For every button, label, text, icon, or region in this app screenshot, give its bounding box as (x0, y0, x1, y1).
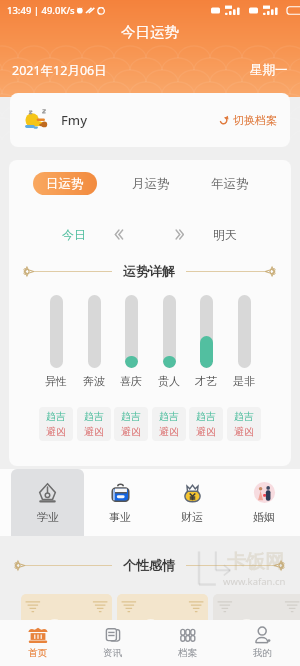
button[interactable]: 档案 (150, 620, 225, 666)
staticText: 日运势 (46, 176, 84, 192)
button[interactable]: 日运势 (33, 172, 97, 195)
staticText: Fmy (61, 111, 88, 129)
button[interactable]: 趋吉 (227, 407, 261, 441)
staticText: 趋吉 (84, 410, 104, 423)
button[interactable]: 趋吉 (114, 407, 148, 441)
button[interactable]: 学业 (11, 469, 84, 536)
staticText: 我的 (253, 647, 272, 659)
button[interactable]: 月运势 (123, 172, 179, 195)
staticText: 避凶 (196, 425, 216, 438)
staticText: 趋吉 (196, 410, 216, 423)
button[interactable]: 事业 (84, 469, 156, 536)
button[interactable]: 趋吉 (77, 407, 111, 441)
staticText: 婚姻 (253, 510, 275, 524)
button[interactable]: 明天 (207, 225, 243, 243)
staticText: 奔波 (83, 374, 105, 388)
button[interactable]: 今日 (56, 225, 92, 243)
staticText: 资讯 (103, 647, 122, 659)
button[interactable]: 资讯 (75, 620, 150, 666)
button[interactable]: 下一天 (166, 225, 194, 243)
staticText: 喜庆 (120, 374, 142, 388)
staticText: 个性感情 (123, 557, 175, 573)
staticText: 今日运势 (121, 23, 179, 41)
staticText: 才艺 (195, 374, 217, 388)
staticText: 事业 (109, 510, 131, 524)
staticText: 月运势 (132, 176, 170, 192)
button[interactable]: 我的 (225, 620, 300, 666)
staticText: 趋吉 (159, 410, 179, 423)
staticText: 财运 (181, 510, 203, 524)
staticText: 卡饭网 (227, 550, 284, 574)
staticText: 感情 (170, 638, 192, 652)
staticText: 运势详解 (123, 263, 175, 279)
staticText: 切换档案 (233, 113, 277, 127)
staticText: 档案 (178, 647, 197, 659)
button[interactable]: Fmy (10, 93, 290, 147)
staticText: www.kafan.cn (223, 575, 286, 588)
staticText: 趋吉 (234, 410, 254, 423)
staticText: 2021年12月06日 (12, 62, 107, 79)
staticText: 是非 (233, 374, 255, 388)
other: 切换档案 (218, 115, 229, 126)
button[interactable]: 财富 (213, 594, 300, 654)
staticText: 今日 (62, 227, 86, 242)
staticText: 异性 (45, 374, 67, 388)
staticText: 贵人 (158, 374, 180, 388)
staticText: 13:49 | 49.0K/s (7, 4, 75, 17)
button[interactable]: 趋吉 (39, 407, 73, 441)
staticText: 趋吉 (46, 410, 66, 423)
button[interactable]: 婚姻 (228, 469, 300, 536)
button[interactable]: 感情 (117, 594, 208, 654)
button[interactable]: 财运 (156, 469, 228, 536)
staticText: 星期一 (250, 62, 288, 78)
staticText: 年运势 (211, 176, 249, 192)
staticText: 避凶 (46, 425, 66, 438)
button[interactable]: 首页 (0, 620, 75, 666)
staticText: 学业 (37, 510, 59, 524)
staticText: 财富 (266, 638, 288, 652)
button[interactable]: 切换档案 (214, 109, 281, 131)
button[interactable]: 个性 (21, 594, 112, 654)
staticText: 明天 (213, 227, 237, 242)
button[interactable]: 趋吉 (152, 407, 186, 441)
button[interactable]: 上一天 (105, 225, 133, 243)
staticText: 避凶 (159, 425, 179, 438)
button[interactable]: 趋吉 (189, 407, 223, 441)
staticText: 避凶 (84, 425, 104, 438)
staticText: 首页 (28, 647, 47, 659)
staticText: 避凶 (234, 425, 254, 438)
staticText: 趋吉 (121, 410, 141, 423)
button[interactable]: 年运势 (202, 172, 258, 195)
staticText: 避凶 (121, 425, 141, 438)
